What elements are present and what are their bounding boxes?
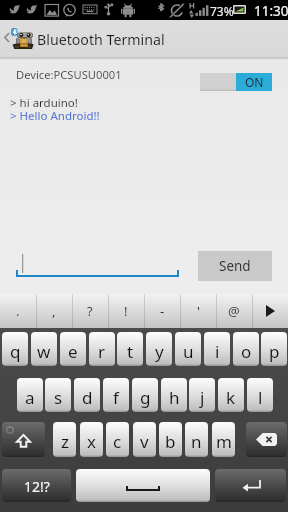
button[interactable]: Up <box>0 20 288 57</box>
staticText: ' <box>197 302 200 320</box>
staticText: q <box>10 340 21 363</box>
button[interactable]: a <box>17 378 43 412</box>
button[interactable]: s <box>45 378 71 412</box>
staticText: e <box>68 340 78 363</box>
staticText: > Hello Android!! <box>10 108 100 124</box>
button[interactable]: j <box>189 378 215 412</box>
staticText: u <box>183 340 194 363</box>
button[interactable]: h <box>161 378 187 412</box>
staticText: 11:30 <box>254 2 288 20</box>
button[interactable]: Backspace <box>246 422 287 457</box>
staticText: h <box>169 386 180 409</box>
button[interactable]: n <box>185 422 208 457</box>
button[interactable]: x <box>80 422 103 457</box>
button[interactable]: ! <box>108 294 144 328</box>
button[interactable]: Symbols <box>2 469 71 502</box>
button[interactable]: . <box>0 294 36 328</box>
staticText: i <box>215 340 220 363</box>
button[interactable]: p <box>261 332 287 366</box>
staticText: v <box>140 430 149 453</box>
button[interactable]: t <box>117 332 143 366</box>
staticText: a <box>25 386 35 409</box>
staticText: s <box>54 386 63 409</box>
staticText: ON <box>245 74 264 90</box>
button[interactable]: u <box>175 332 201 366</box>
button[interactable]: More symbols <box>252 294 288 328</box>
button[interactable]: ? <box>72 294 108 328</box>
button[interactable]: @ <box>216 294 252 328</box>
button[interactable]: q <box>2 332 28 366</box>
button[interactable]: i <box>204 332 230 366</box>
button[interactable]: ' <box>180 294 216 328</box>
staticText: z <box>61 430 69 453</box>
staticText: l <box>258 386 263 409</box>
button[interactable]: f <box>103 378 129 412</box>
staticText: t <box>127 340 134 363</box>
button[interactable]: y <box>146 332 172 366</box>
button[interactable]: b <box>159 422 182 457</box>
staticText: j <box>200 386 205 409</box>
staticText: x <box>87 430 96 453</box>
staticText: 73% <box>210 3 234 19</box>
button[interactable]: Shift <box>2 422 45 457</box>
staticText: m <box>216 430 232 453</box>
staticText: n <box>191 430 202 453</box>
button[interactable]: - <box>144 294 180 328</box>
staticText: g <box>140 386 151 409</box>
staticText: Device:PCSUSU0001 <box>16 67 122 82</box>
staticText: k <box>226 386 236 409</box>
staticText: Bluetooth Terminal <box>37 30 165 49</box>
button[interactable]: , <box>36 294 72 328</box>
button[interactable]: c <box>106 422 129 457</box>
button[interactable]: r <box>89 332 115 366</box>
staticText: ! <box>124 302 128 320</box>
staticText: > hi arduino! <box>10 95 78 111</box>
staticText: . <box>16 302 20 320</box>
button[interactable]: v <box>133 422 156 457</box>
staticText: d <box>82 386 93 409</box>
button[interactable]: w <box>31 332 57 366</box>
button[interactable]: m <box>212 422 235 457</box>
button[interactable]: Bluetooth toggle <box>200 73 272 91</box>
staticText: ? <box>87 302 93 320</box>
staticText: , <box>52 302 56 320</box>
staticText: f <box>113 386 119 409</box>
staticText: @ <box>228 302 240 320</box>
button[interactable]: g <box>132 378 158 412</box>
staticText: 12!? <box>24 477 50 496</box>
staticText: o <box>241 340 252 363</box>
button[interactable]: o <box>233 332 259 366</box>
button[interactable]: Space <box>76 469 210 502</box>
staticText: c <box>113 430 122 453</box>
button[interactable]: Send <box>198 251 272 281</box>
staticText: b <box>165 430 176 453</box>
staticText: Send <box>219 257 251 275</box>
button[interactable]: k <box>218 378 244 412</box>
button[interactable]: l <box>247 378 273 412</box>
staticText: p <box>269 340 280 363</box>
button[interactable]: z <box>53 422 76 457</box>
button[interactable]: d <box>74 378 100 412</box>
button[interactable]: e <box>60 332 86 366</box>
button[interactable]: Enter <box>215 469 286 502</box>
staticText: - <box>160 302 165 320</box>
staticText: w <box>37 340 51 363</box>
staticText: y <box>155 340 164 363</box>
staticText: r <box>98 340 106 363</box>
